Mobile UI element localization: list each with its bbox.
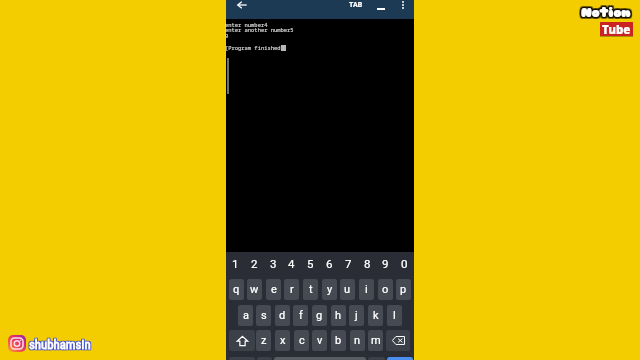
button[interactable]: a bbox=[238, 305, 253, 326]
button[interactable]: t bbox=[303, 279, 318, 300]
button[interactable]: v bbox=[312, 330, 327, 351]
staticText: 0 bbox=[401, 257, 408, 270]
button[interactable]: r bbox=[284, 279, 299, 300]
staticText: Notion bbox=[583, 2, 633, 18]
staticText: 9 bbox=[225, 32, 229, 39]
staticText: Notion bbox=[581, 4, 631, 20]
button[interactable]: Period bbox=[368, 357, 385, 360]
button[interactable]: s bbox=[256, 305, 271, 326]
button[interactable]: f bbox=[293, 305, 308, 326]
button[interactable]: c bbox=[294, 330, 309, 351]
button[interactable]: d bbox=[275, 305, 290, 326]
button[interactable]: 3 bbox=[264, 252, 283, 277]
staticText: Notion bbox=[581, 2, 631, 18]
staticText: 9 bbox=[382, 257, 389, 270]
button[interactable]: Space bbox=[274, 357, 366, 360]
staticText: Notion bbox=[581, 3, 631, 19]
staticText: p bbox=[400, 283, 407, 296]
staticText: shubhamsIn bbox=[30, 338, 92, 353]
staticText: x bbox=[280, 334, 286, 347]
button[interactable]: g bbox=[312, 305, 327, 326]
staticText: n bbox=[354, 334, 361, 347]
button[interactable]: k bbox=[368, 305, 383, 326]
staticText: z bbox=[261, 334, 267, 347]
button[interactable]: x bbox=[275, 330, 290, 351]
staticText: h bbox=[335, 309, 342, 322]
staticText: l bbox=[393, 309, 396, 322]
button[interactable]: i bbox=[359, 279, 374, 300]
staticText: shubhamsIn bbox=[28, 337, 90, 352]
button[interactable]: y bbox=[322, 279, 337, 300]
staticText: Notion bbox=[581, 5, 631, 21]
button[interactable]: Backspace bbox=[386, 330, 410, 351]
button[interactable]: 5 bbox=[301, 252, 320, 277]
staticText: e bbox=[271, 283, 277, 296]
button[interactable]: 7 bbox=[339, 252, 358, 277]
button[interactable]: u bbox=[340, 279, 355, 300]
button[interactable]: h bbox=[331, 305, 346, 326]
button[interactable]: n bbox=[350, 330, 365, 351]
button[interactable]: m bbox=[368, 330, 383, 351]
staticText: y bbox=[327, 283, 333, 296]
staticText: 7 bbox=[345, 257, 352, 270]
button[interactable]: 9 bbox=[376, 252, 395, 277]
staticText: shubhamsIn bbox=[29, 336, 91, 351]
staticText: Notion bbox=[580, 4, 630, 20]
staticText: Notion bbox=[579, 3, 629, 19]
button[interactable]: 0 bbox=[395, 252, 414, 277]
staticText: Notion bbox=[582, 3, 632, 19]
button[interactable]: p bbox=[396, 279, 411, 300]
staticText: f bbox=[299, 309, 303, 322]
button[interactable]: Instagram bbox=[8, 335, 26, 352]
staticText: enter number4 bbox=[225, 21, 268, 28]
button[interactable]: Back bbox=[232, 0, 251, 14]
staticText: shubhamsIn bbox=[30, 337, 92, 352]
staticText: Notion bbox=[580, 5, 630, 21]
button[interactable]: o bbox=[378, 279, 393, 300]
staticText: Notion bbox=[582, 4, 632, 20]
staticText: shubhamsIn bbox=[28, 338, 90, 353]
staticText: Notion bbox=[580, 3, 630, 19]
staticText: t bbox=[309, 283, 313, 296]
staticText: Notion bbox=[582, 2, 632, 18]
staticText: [Program finished] bbox=[225, 44, 284, 51]
button[interactable]: j bbox=[349, 305, 364, 326]
staticText: 3 bbox=[270, 257, 277, 270]
staticText: a bbox=[243, 309, 249, 322]
button[interactable]: Shift bbox=[229, 330, 255, 351]
staticText: u bbox=[344, 283, 351, 296]
button[interactable]: 6 bbox=[320, 252, 339, 277]
button[interactable]: l bbox=[387, 305, 402, 326]
button[interactable]: 8 bbox=[358, 252, 377, 277]
button[interactable]: w bbox=[247, 279, 262, 300]
button[interactable]: shubhamsIn bbox=[28, 336, 90, 351]
button[interactable]: e bbox=[266, 279, 281, 300]
staticText: Notion bbox=[581, 6, 631, 22]
staticText: b bbox=[335, 334, 342, 347]
button[interactable]: Enter bbox=[387, 357, 413, 360]
button[interactable]: b bbox=[331, 330, 346, 351]
staticText: s bbox=[261, 309, 267, 322]
staticText: Notion bbox=[579, 5, 629, 21]
button[interactable]: Minimize bbox=[371, 0, 390, 14]
staticText: Tube bbox=[602, 22, 631, 36]
staticText: g bbox=[316, 309, 323, 322]
staticText: w bbox=[250, 283, 259, 296]
staticText: o bbox=[382, 283, 389, 296]
button[interactable]: 2 bbox=[245, 252, 264, 277]
staticText: r bbox=[290, 283, 294, 296]
staticText: d bbox=[279, 309, 286, 322]
button[interactable]: Emoji bbox=[257, 357, 272, 360]
staticText: shubhamsIn bbox=[29, 337, 91, 352]
button[interactable]: More options bbox=[393, 0, 412, 14]
staticText: Notion bbox=[580, 2, 630, 18]
button[interactable]: 4 bbox=[282, 252, 301, 277]
button[interactable]: Notion bbox=[577, 3, 627, 19]
button[interactable]: z bbox=[256, 330, 271, 351]
button[interactable]: 1 bbox=[226, 252, 245, 277]
staticText: Notion bbox=[583, 3, 633, 19]
button[interactable]: q bbox=[229, 279, 244, 300]
staticText: Notion bbox=[579, 6, 629, 22]
staticText: j bbox=[355, 309, 358, 322]
